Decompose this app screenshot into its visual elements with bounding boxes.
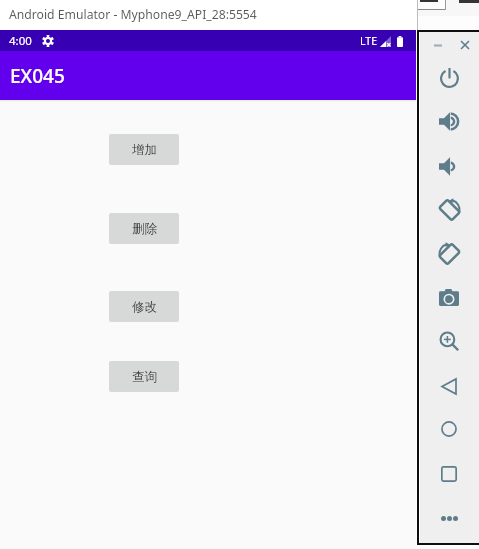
button[interactable]: 查询 <box>109 361 179 392</box>
button[interactable]: Rotate right <box>435 240 463 268</box>
button[interactable]: 删除 <box>109 213 179 244</box>
button[interactable]: Zoom <box>435 327 463 355</box>
staticText: 删除 <box>132 221 157 237</box>
button[interactable]: Back <box>435 372 463 400</box>
button[interactable]: Overview <box>435 460 463 488</box>
button[interactable]: 增加 <box>109 134 179 165</box>
staticText: Android Emulator - Myphone9_API_28:5554 <box>9 6 257 23</box>
button[interactable]: Volume down <box>435 152 463 180</box>
staticText: 修改 <box>132 299 157 315</box>
button[interactable]: Screenshot <box>435 283 463 311</box>
staticText: 查询 <box>132 369 157 385</box>
button[interactable]: Home <box>435 415 463 443</box>
button[interactable]: Minimize <box>428 35 448 55</box>
button[interactable]: Volume up <box>435 107 463 135</box>
staticText: 增加 <box>132 142 157 158</box>
staticText: LTE <box>360 34 377 48</box>
button[interactable]: Rotate left <box>435 196 463 224</box>
staticText: EX045 <box>10 63 65 89</box>
button[interactable]: Close <box>455 35 475 55</box>
button[interactable]: 修改 <box>109 291 179 322</box>
button[interactable]: Power <box>435 64 463 92</box>
staticText: 4:00 <box>9 33 32 49</box>
button[interactable]: More <box>435 504 463 532</box>
